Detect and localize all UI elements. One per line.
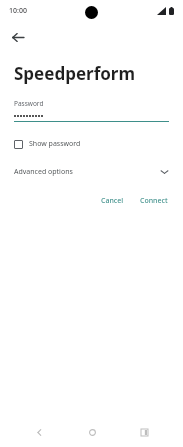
staticText: Cancel (101, 196, 124, 206)
button[interactable]: Connect (134, 192, 174, 210)
staticText: Show password (29, 139, 81, 149)
staticText: Speedperform (14, 62, 136, 85)
button[interactable]: Advanced options (0, 162, 183, 182)
button[interactable]: Show password (11, 136, 172, 152)
button[interactable]: Recent apps (131, 419, 157, 445)
button[interactable]: Back (26, 419, 52, 445)
staticText: Connect (140, 196, 168, 206)
staticText: Advanced options (14, 167, 73, 177)
button[interactable]: Cancel (95, 192, 130, 210)
staticText: Password (14, 99, 44, 108)
button[interactable]: Back (6, 25, 30, 49)
staticText: 10:00 (9, 6, 27, 16)
button[interactable]: Home (79, 419, 105, 445)
button[interactable]: Password (14, 99, 169, 122)
